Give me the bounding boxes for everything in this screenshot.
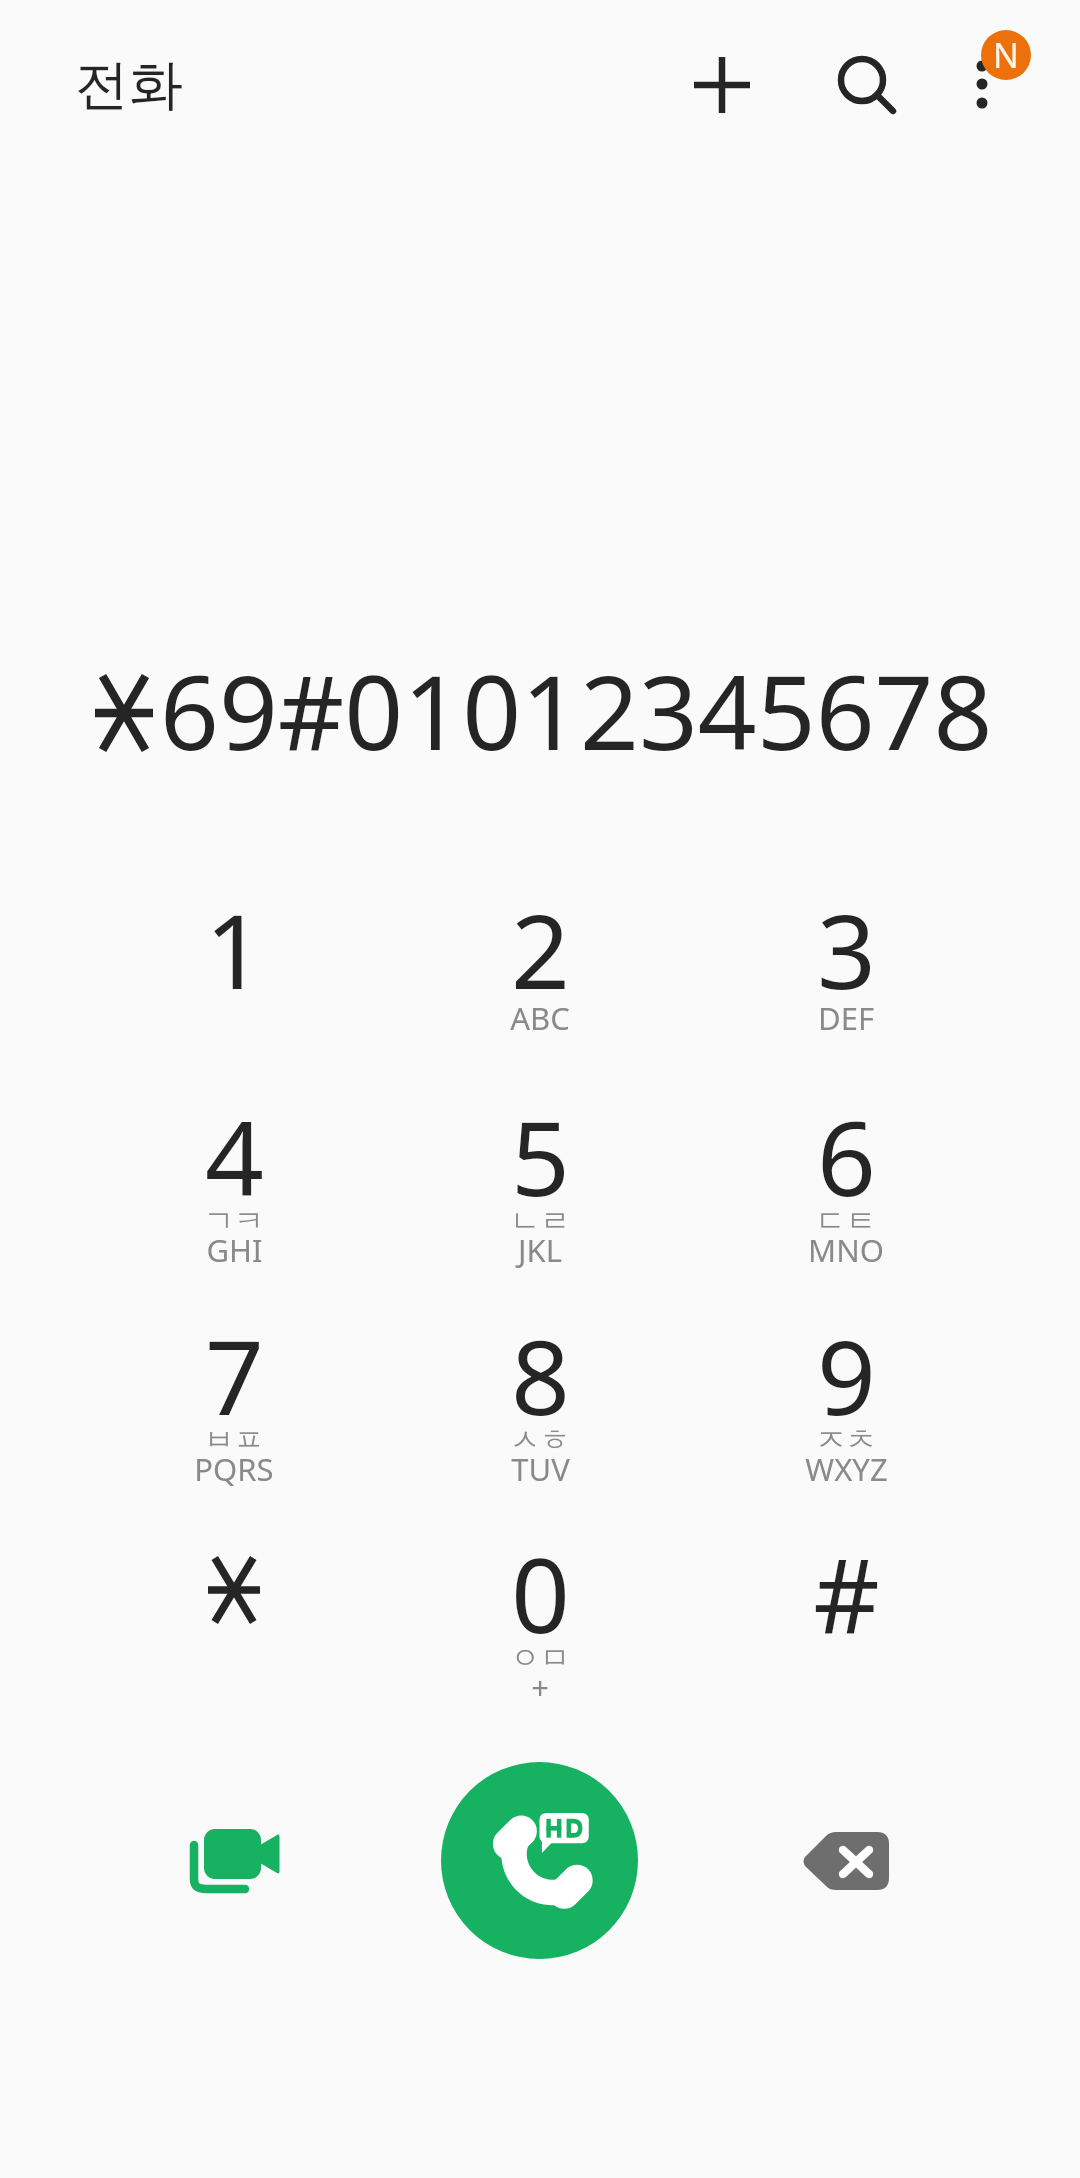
staticText: DEF	[818, 997, 874, 1039]
staticText: MNO	[808, 1229, 884, 1271]
staticText: ㄴㄹ	[510, 1202, 570, 1240]
staticText: #	[813, 1523, 880, 1663]
staticText: 1	[205, 879, 264, 1019]
staticText: ㄷㅌ	[816, 1202, 876, 1240]
button[interactable]: Search	[807, 25, 917, 135]
button[interactable]: 5	[387, 1043, 693, 1243]
staticText: N	[993, 32, 1019, 78]
button[interactable]: 3	[693, 836, 999, 1036]
staticText: 8	[511, 1305, 570, 1445]
staticText: 0	[511, 1523, 570, 1663]
staticText: 3	[817, 879, 876, 1019]
button[interactable]: Video call	[174, 1795, 306, 1927]
button[interactable]: 0	[387, 1480, 693, 1680]
button[interactable]: 1	[81, 836, 387, 1036]
button[interactable]: Call	[441, 1762, 638, 1959]
staticText: 9	[817, 1305, 876, 1445]
button[interactable]: 8	[387, 1262, 693, 1462]
staticText: 5	[511, 1086, 570, 1226]
button[interactable]: 9	[693, 1262, 999, 1462]
staticText: 2	[511, 879, 570, 1019]
staticText: 69#01012345678	[160, 640, 993, 780]
staticText: +	[531, 1666, 549, 1708]
button[interactable]: 6	[693, 1043, 999, 1243]
button[interactable]: Star key	[81, 1480, 387, 1680]
button[interactable]: #	[693, 1480, 999, 1680]
button[interactable]: Dialled number ✱ 69#01012345678	[0, 620, 1080, 800]
button[interactable]: Backspace	[780, 1800, 912, 1932]
staticText: JKL	[518, 1229, 562, 1271]
button[interactable]: More options	[932, 20, 1032, 120]
staticText: TUV	[511, 1448, 570, 1490]
staticText: ㅇㅁ	[510, 1639, 570, 1677]
staticText: ㅅㅎ	[510, 1421, 570, 1459]
button[interactable]: 2	[387, 836, 693, 1036]
staticText: ABC	[510, 997, 570, 1039]
staticText: ㅂㅍ	[204, 1421, 264, 1459]
staticText: ㄱㅋ	[204, 1202, 264, 1240]
staticText: 6	[817, 1086, 876, 1226]
button[interactable]: 7	[81, 1262, 387, 1462]
staticText: 전화	[75, 51, 183, 119]
staticText: PQRS	[194, 1448, 274, 1490]
button[interactable]: New contact	[667, 30, 777, 140]
staticText: 7	[205, 1305, 264, 1445]
button[interactable]: 4	[81, 1043, 387, 1243]
staticText: ㅈㅊ	[816, 1421, 876, 1459]
staticText: WXYZ	[805, 1448, 888, 1490]
staticText: GHI	[206, 1229, 263, 1271]
staticText: 4	[205, 1086, 264, 1226]
button[interactable]: 전화	[60, 30, 220, 140]
